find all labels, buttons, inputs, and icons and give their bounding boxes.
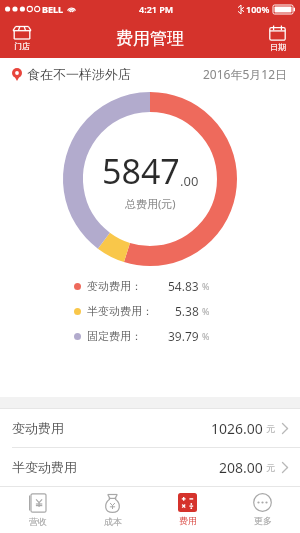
- staticText: 39.79: [168, 328, 199, 344]
- staticText: 5.38: [175, 303, 199, 319]
- staticText: BELL: [42, 3, 64, 15]
- staticText: 费用管理: [116, 28, 184, 49]
- button[interactable]: 费用: [150, 486, 225, 533]
- staticText: 2016年5月12日: [203, 66, 288, 82]
- staticText: 半变动费用: [12, 459, 77, 475]
- staticText: .00: [180, 172, 199, 190]
- staticText: 4:21 PM: [139, 3, 174, 15]
- staticText: 营收: [29, 516, 47, 527]
- staticText: %: [202, 305, 210, 317]
- staticText: %: [202, 330, 210, 342]
- staticText: 费用: [179, 515, 197, 526]
- staticText: 成本: [104, 516, 122, 527]
- staticText: 日期: [270, 42, 286, 52]
- button[interactable]: 成本: [75, 486, 150, 533]
- button[interactable]: 营收: [0, 486, 75, 533]
- staticText: 变动费用: [12, 420, 64, 436]
- staticText: 变动费用：: [87, 279, 142, 293]
- staticText: 总费用(元): [125, 196, 176, 211]
- button[interactable]: 门店: [10, 23, 34, 53]
- staticText: %: [202, 280, 210, 292]
- staticText: 半变动费用：: [87, 304, 153, 318]
- staticText: 5847: [102, 148, 180, 194]
- staticText: 元: [266, 423, 275, 434]
- staticText: 食在不一样涉外店: [27, 66, 131, 82]
- staticText: 54.83: [168, 278, 199, 294]
- staticText: 更多: [254, 515, 272, 526]
- staticText: 1026.00: [211, 419, 263, 438]
- staticText: 100%: [246, 3, 270, 15]
- button[interactable]: 半变动费用: [0, 448, 300, 486]
- staticText: 门店: [14, 41, 30, 51]
- button[interactable]: 更多: [225, 486, 300, 533]
- button[interactable]: 日期: [267, 23, 288, 54]
- staticText: 元: [266, 462, 275, 473]
- staticText: 208.00: [219, 458, 263, 477]
- button[interactable]: 食在不一样涉外店: [0, 58, 300, 90]
- staticText: 固定费用：: [87, 329, 142, 343]
- button[interactable]: 变动费用: [0, 409, 300, 447]
